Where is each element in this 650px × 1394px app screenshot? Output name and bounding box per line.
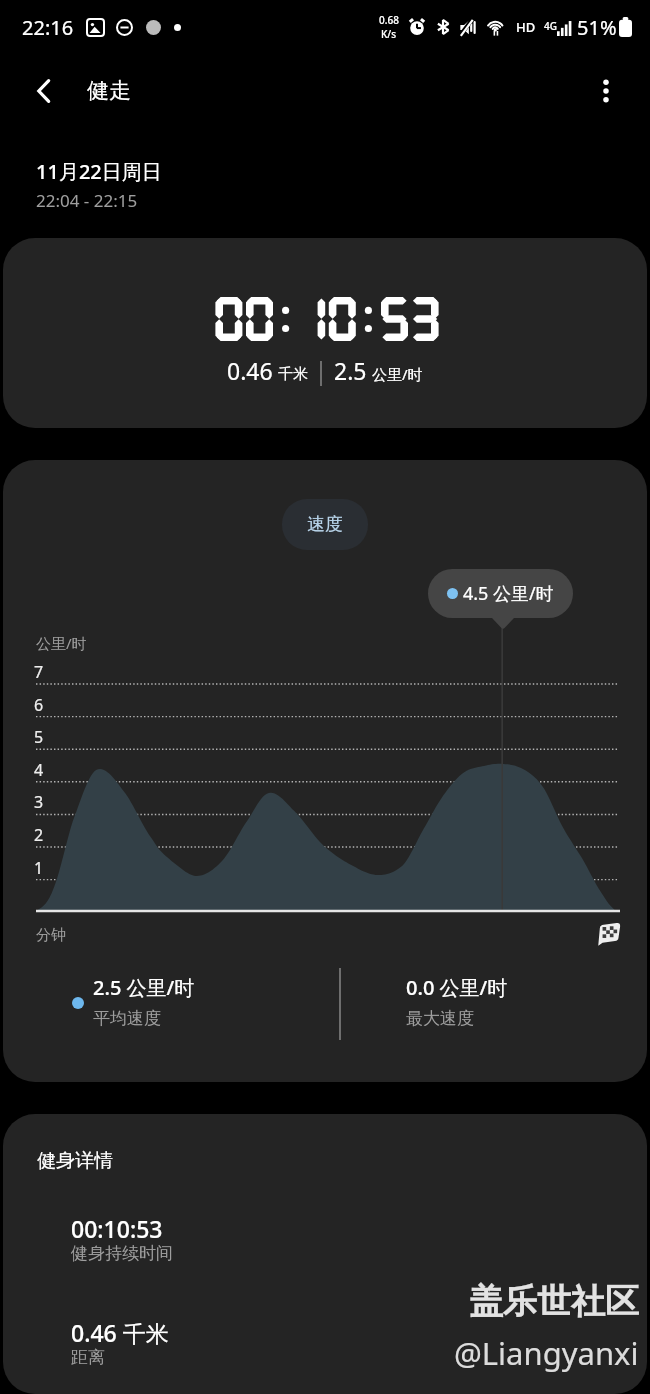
staticText: 2.5 bbox=[334, 355, 367, 386]
staticText: 4G bbox=[544, 19, 557, 33]
button[interactable]: Back bbox=[20, 67, 68, 115]
staticText: 0.46 bbox=[227, 355, 273, 386]
staticText: 最大速度 bbox=[406, 1008, 474, 1029]
staticText: 0.0 公里/时 bbox=[406, 974, 508, 1001]
staticText: 健身持续时间 bbox=[71, 1243, 173, 1264]
staticText: 0.68 bbox=[379, 13, 399, 27]
staticText: 22:16 bbox=[22, 14, 74, 41]
button[interactable]: 0.0 公里/时 bbox=[406, 974, 508, 1029]
staticText: 公里/时 bbox=[36, 633, 87, 653]
staticText: 2.5 公里/时 bbox=[93, 974, 195, 1001]
staticText: 51% bbox=[577, 14, 617, 41]
staticText: 分钟 bbox=[36, 926, 66, 945]
staticText: 健身详情 bbox=[37, 1149, 113, 1173]
button[interactable]: Finish bbox=[595, 920, 622, 947]
staticText: 速度 bbox=[307, 513, 343, 536]
staticText: 4.5 公里/时 bbox=[463, 581, 554, 606]
staticText: 6 bbox=[34, 694, 44, 716]
staticText: 5 bbox=[34, 726, 44, 748]
staticText: 健走 bbox=[87, 77, 131, 105]
staticText: 千米 bbox=[278, 365, 308, 384]
button[interactable]: 2.5 公里/时 bbox=[93, 974, 195, 1029]
staticText: 00:10:53 bbox=[71, 1213, 163, 1244]
staticText: 平均速度 bbox=[93, 1008, 161, 1029]
button[interactable]: More options bbox=[582, 67, 630, 115]
staticText: 盖乐世社区 bbox=[469, 1280, 639, 1323]
staticText: 距离 bbox=[71, 1347, 105, 1368]
button[interactable]: 4.5 公里/时 bbox=[428, 569, 573, 629]
staticText: K/s bbox=[381, 27, 397, 41]
staticText: @Liangyanxi bbox=[454, 1332, 639, 1374]
staticText: 22:04 - 22:15 bbox=[36, 189, 138, 212]
staticText: 3 bbox=[34, 791, 44, 813]
staticText: HD bbox=[516, 18, 536, 36]
staticText: 0.46 千米 bbox=[71, 1317, 169, 1348]
staticText: 公里/时 bbox=[372, 364, 423, 384]
button[interactable]: 0.46 bbox=[3, 238, 647, 428]
button[interactable]: 速度 bbox=[282, 499, 368, 550]
staticText: 11月22日周日 bbox=[36, 158, 162, 185]
staticText: 4 bbox=[34, 759, 44, 781]
staticText: 2 bbox=[34, 824, 44, 846]
staticText: 1 bbox=[34, 857, 44, 879]
staticText: 7 bbox=[34, 661, 44, 683]
